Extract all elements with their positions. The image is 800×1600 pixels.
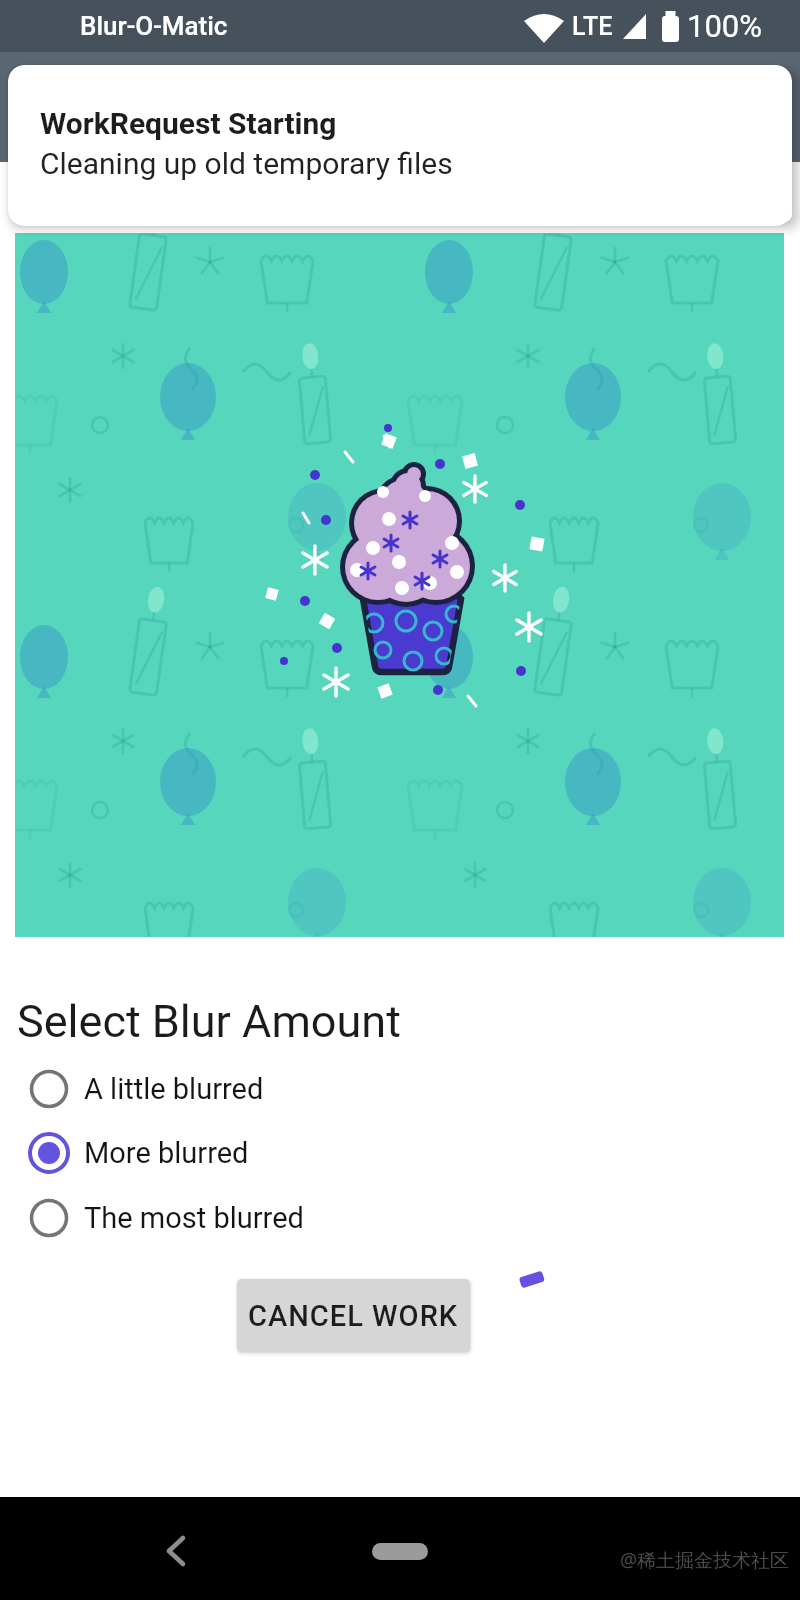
button[interactable]: More blurred xyxy=(16,1127,336,1179)
staticText: More blurred xyxy=(84,1136,249,1170)
staticText: The most blurred xyxy=(84,1201,304,1235)
staticText: @稀土掘金技术社区 xyxy=(620,1547,790,1573)
button[interactable] xyxy=(148,1523,204,1579)
button[interactable] xyxy=(372,1543,428,1560)
button[interactable]: The most blurred xyxy=(16,1192,336,1244)
staticText: CANCEL WORK xyxy=(248,1299,459,1333)
staticText: LTE xyxy=(572,12,613,41)
staticText: A little blurred xyxy=(84,1072,264,1106)
staticText: Blur-O-Matic xyxy=(80,11,228,41)
staticText: 100% xyxy=(687,8,762,44)
staticText: Cleaning up old temporary files xyxy=(40,146,453,181)
button[interactable]: CANCEL WORK xyxy=(237,1279,470,1352)
staticText: Select Blur Amount xyxy=(17,995,401,1048)
button[interactable]: A little blurred xyxy=(16,1063,336,1115)
button[interactable]: WorkRequest Starting xyxy=(8,65,792,226)
staticText: WorkRequest Starting xyxy=(40,106,337,141)
